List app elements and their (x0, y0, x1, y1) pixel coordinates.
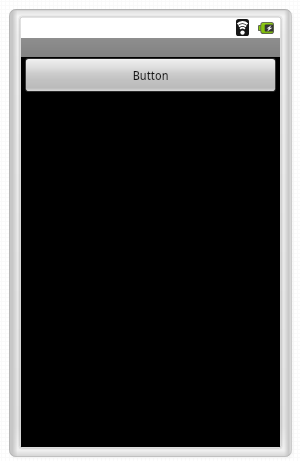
staticText: Button (133, 67, 169, 84)
other: Wi-Fi signal (236, 19, 249, 36)
other: Battery charging (258, 22, 274, 34)
button[interactable]: Button (25, 58, 276, 92)
